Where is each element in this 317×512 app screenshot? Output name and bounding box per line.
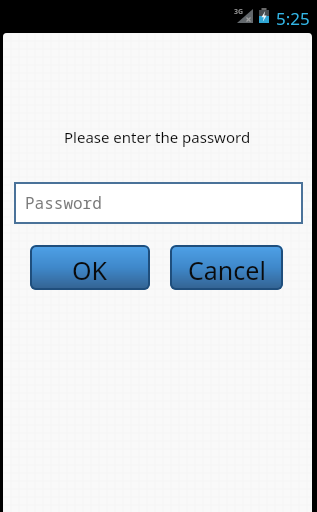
button[interactable]: Password xyxy=(14,182,303,224)
staticText: OK xyxy=(72,253,108,287)
staticText: Cancel xyxy=(188,253,266,287)
button[interactable]: OK xyxy=(30,245,150,290)
staticText: Please enter the password xyxy=(64,127,251,147)
staticText: Password xyxy=(25,192,102,214)
staticText: 3G xyxy=(234,7,244,17)
staticText: 5:25 xyxy=(276,7,310,30)
button[interactable]: Cancel xyxy=(170,245,283,290)
